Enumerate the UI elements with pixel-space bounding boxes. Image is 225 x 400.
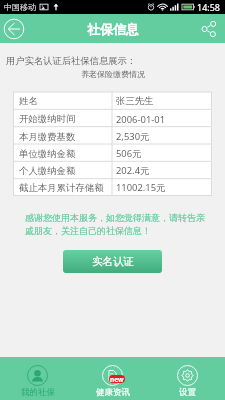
staticText: 实名认证 (92, 255, 134, 268)
staticText: 2,530元 (116, 130, 150, 143)
staticText: 14:58 (197, 1, 221, 13)
staticText: 健康资讯 (96, 387, 130, 398)
staticText: 截止本月累计存储额 (19, 182, 104, 194)
staticText: 我的社保 (21, 387, 55, 398)
staticText: 个人缴纳金额 (19, 165, 76, 177)
staticText: 养老保险缴费情况 (81, 69, 145, 79)
button[interactable]: 实名认证 (63, 250, 162, 273)
staticText: 用户实名认证后社保信息展示： (6, 55, 137, 67)
button[interactable]: Share (198, 18, 220, 40)
staticText: 社保信息 (87, 21, 139, 37)
staticText: 感谢您使用本服务，如您觉得满意，请转告亲戚朋友，关注自己的社保信息！ (25, 212, 209, 236)
staticText: 姓名 (19, 95, 38, 107)
staticText: 中国移动 (4, 2, 36, 12)
staticText: 单位缴纳金额 (19, 148, 76, 160)
staticText: 本月缴费基数 (19, 131, 76, 143)
staticText: 设置 (179, 387, 196, 398)
button[interactable]: 设置 (150, 357, 225, 400)
staticText: new (110, 375, 124, 383)
staticText: 2006-01-01 (116, 113, 166, 126)
staticText: 11002.15元 (116, 181, 166, 194)
button[interactable]: 我的社保 (0, 357, 75, 400)
button[interactable]: Back (2, 17, 26, 41)
staticText: 张三先生 (116, 95, 154, 107)
staticText: 202.4元 (116, 164, 150, 177)
staticText: 506元 (116, 147, 142, 160)
staticText: 开始缴纳时间 (19, 113, 76, 125)
button[interactable]: new (75, 357, 150, 400)
